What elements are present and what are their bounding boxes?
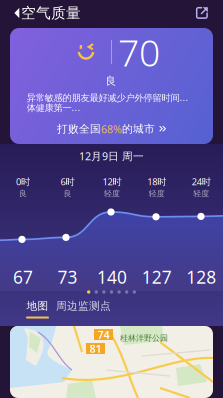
staticText: 12时 bbox=[103, 175, 122, 188]
staticText: 6时 bbox=[60, 175, 74, 188]
staticText: 轻度 bbox=[193, 189, 209, 199]
staticText: 地图 bbox=[26, 299, 48, 312]
staticText: 140 bbox=[97, 265, 127, 288]
staticText: 67 bbox=[13, 265, 33, 288]
staticText: 74 bbox=[97, 327, 109, 342]
staticText: 18时 bbox=[147, 175, 166, 188]
staticText: 异常敏感的朋友最好减少户外停留时间，身 bbox=[26, 91, 196, 104]
button[interactable]: 地图 bbox=[23, 298, 51, 320]
staticText: 0时 bbox=[16, 175, 30, 188]
staticText: 体健康第一哦。 bbox=[26, 101, 88, 114]
staticText: 73 bbox=[57, 265, 77, 288]
button[interactable]: 周边监测点 bbox=[55, 298, 111, 320]
staticText: 127 bbox=[142, 265, 172, 288]
staticText: 128 bbox=[186, 265, 216, 288]
staticText: 81 bbox=[89, 341, 101, 356]
button[interactable]: Back bbox=[3, 0, 31, 26]
button[interactable]: Share bbox=[187, 0, 217, 26]
staticText: 打败全国 bbox=[57, 122, 101, 135]
staticText: 空气质量 bbox=[21, 4, 81, 22]
staticText: 良 bbox=[105, 74, 116, 87]
staticText: 良 bbox=[19, 189, 27, 199]
button[interactable]: Map bbox=[10, 326, 213, 398]
staticText: 轻度 bbox=[104, 189, 120, 199]
staticText: 良 bbox=[63, 189, 71, 199]
button[interactable]: 打败全国 bbox=[49, 118, 174, 140]
staticText: 68% bbox=[101, 122, 122, 136]
staticText: 24时 bbox=[192, 175, 211, 188]
staticText: 的城市 bbox=[122, 122, 155, 135]
staticText: 周边监测点 bbox=[56, 299, 111, 312]
staticText: 12月9日 周一 bbox=[79, 149, 144, 163]
staticText: 70 bbox=[118, 27, 160, 77]
staticText: 桂林洋野公园 bbox=[120, 333, 168, 343]
staticText: 轻度 bbox=[149, 189, 165, 199]
